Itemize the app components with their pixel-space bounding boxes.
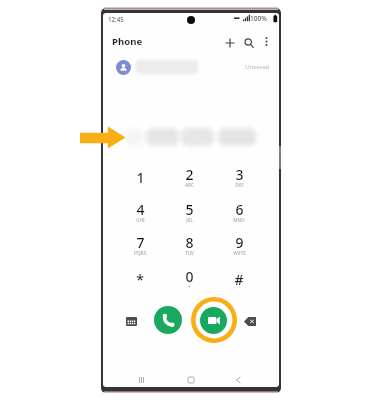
button[interactable]: Search [240,34,257,51]
staticText: GHI [136,217,145,223]
staticText: 2 [185,165,194,184]
button[interactable]: 9 [217,229,261,261]
staticText: 0 [185,267,194,286]
button[interactable]: Unsaved [103,55,279,79]
staticText: 9 [235,233,244,252]
staticText: WXYZ [233,250,246,256]
button[interactable]: Call [154,306,182,334]
button[interactable]: Video call [200,307,227,334]
staticText: 4 [136,200,145,219]
staticText: Unsaved [245,63,270,71]
staticText: 8 [185,233,194,252]
staticText: DEF [235,182,244,188]
staticText: ABC [185,182,194,188]
button[interactable]: # [217,263,261,295]
button[interactable]: 0 [167,263,211,295]
staticText: + [188,284,191,290]
button[interactable]: Recents [132,371,150,387]
button[interactable]: More options [259,34,274,49]
staticText: * [136,270,144,289]
button[interactable]: 3 [217,161,261,193]
staticText: 12:45 [108,15,124,23]
staticText: MNO [233,217,245,223]
staticText: Phone [112,35,143,48]
staticText: 5 [185,200,194,219]
staticText: 1 [136,168,145,187]
staticText: TUV [185,250,194,256]
button[interactable]: * [118,263,162,295]
button[interactable]: 7 [118,229,162,261]
button[interactable]: 6 [217,196,261,228]
staticText: 6 [235,200,244,219]
staticText: 7 [136,233,145,252]
button[interactable]: Add contact [221,34,238,51]
button[interactable]: 8 [167,229,211,261]
staticText: 3 [235,165,244,184]
button[interactable]: Back [229,371,247,387]
button[interactable]: Backspace [241,312,259,330]
staticText: 100% [250,14,267,23]
button[interactable]: 2 [167,161,211,193]
staticText: # [234,270,244,289]
button[interactable]: Keypad [122,312,140,330]
staticText: JKL [186,217,193,223]
staticText: PQRS [134,250,146,256]
button[interactable]: 5 [167,196,211,228]
button[interactable]: Home [182,371,200,387]
button[interactable]: 1 [118,161,162,193]
button[interactable]: 4 [118,196,162,228]
